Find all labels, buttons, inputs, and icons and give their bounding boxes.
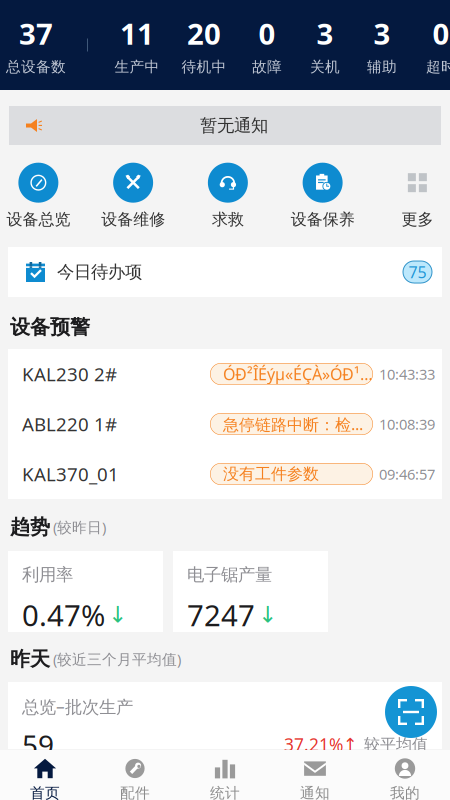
staticText: 37.21% xyxy=(284,733,343,756)
staticText: 关机 xyxy=(310,58,340,76)
staticText: (较近三个月平均值) xyxy=(53,649,181,669)
button[interactable]: 统计 xyxy=(180,750,270,800)
staticText: 趋势 xyxy=(10,515,50,539)
button[interactable]: 通知 xyxy=(270,750,360,800)
staticText: 3 xyxy=(316,14,333,53)
staticText: 10:08:39 xyxy=(379,414,435,434)
button[interactable]: 设备总览 xyxy=(0,163,86,229)
button[interactable]: KAL230 2# xyxy=(8,349,442,399)
staticText: KAL230 2# xyxy=(22,362,117,386)
staticText: 设备预警 xyxy=(10,315,90,339)
staticText: ↑ xyxy=(343,735,358,754)
staticText: 10:43:33 xyxy=(379,364,435,384)
staticText: 今日待办项 xyxy=(57,261,142,283)
staticText: 较平均值 xyxy=(364,735,428,754)
button[interactable]: ABL220 1# xyxy=(8,399,442,449)
staticText: 设备维修 xyxy=(101,210,165,229)
button[interactable]: 设备维修 xyxy=(86,163,181,229)
staticText: 首页 xyxy=(30,784,60,800)
staticText: 20 xyxy=(187,14,221,53)
staticText: 利用率 xyxy=(22,564,73,585)
staticText: ↓ xyxy=(258,602,277,628)
staticText: 更多 xyxy=(401,210,433,229)
staticText: 59 xyxy=(22,726,54,763)
staticText: ÓÐ²ÎÉýµ«ÉÇÀ»ÓÐ¹¤¼þ xyxy=(223,363,373,385)
staticText: 设备保养 xyxy=(291,210,355,229)
staticText: 故障 xyxy=(252,58,282,76)
button[interactable]: 设备保养 xyxy=(275,163,370,229)
staticText: 0 xyxy=(432,14,449,53)
staticText: (较昨日) xyxy=(53,517,106,537)
staticText: 待机中 xyxy=(181,58,226,76)
staticText: 没有工件参数 xyxy=(223,464,319,484)
button[interactable]: 求救 xyxy=(180,163,275,229)
staticText: 0.47% xyxy=(22,595,105,634)
button[interactable]: KAL370_01 xyxy=(8,449,442,499)
staticText: 统计 xyxy=(210,784,240,800)
staticText: ↓ xyxy=(108,602,127,628)
staticText: 辅助 xyxy=(367,58,397,76)
button[interactable]: 暂无通知 xyxy=(0,106,450,145)
staticText: 暂无通知 xyxy=(200,115,268,136)
button[interactable]: 今日待办项 xyxy=(0,247,450,297)
staticText: 急停链路中断：检查急停开关 xyxy=(223,413,373,435)
staticText: 电子锯产量 xyxy=(187,564,272,585)
staticText: 总览–批次生产 xyxy=(22,695,133,718)
staticText: 75 xyxy=(408,261,426,283)
staticText: 超时 xyxy=(426,58,450,76)
button[interactable]: 扫一扫 xyxy=(385,686,437,738)
staticText: 7247 xyxy=(187,595,255,634)
staticText: 37 xyxy=(19,14,53,53)
button[interactable]: 配件 xyxy=(90,750,180,800)
staticText: 11 xyxy=(120,14,154,53)
staticText: 配件 xyxy=(120,784,150,800)
staticText: 09:46:57 xyxy=(379,464,435,484)
staticText: 设备总览 xyxy=(6,210,70,229)
staticText: KAL370_01 xyxy=(22,462,119,486)
staticText: 昨天 xyxy=(10,647,50,671)
staticText: 3 xyxy=(373,14,390,53)
staticText: 0 xyxy=(258,14,275,53)
button[interactable]: 我的 xyxy=(360,750,450,800)
button[interactable]: 更多 xyxy=(370,163,450,229)
staticText: 生产中 xyxy=(114,58,159,76)
staticText: 总设备数 xyxy=(6,58,66,76)
staticText: ABL220 1# xyxy=(22,412,117,436)
staticText: 求救 xyxy=(212,210,244,229)
staticText: 我的 xyxy=(390,784,420,800)
staticText: 通知 xyxy=(300,784,330,800)
button[interactable]: 首页 xyxy=(0,750,90,800)
